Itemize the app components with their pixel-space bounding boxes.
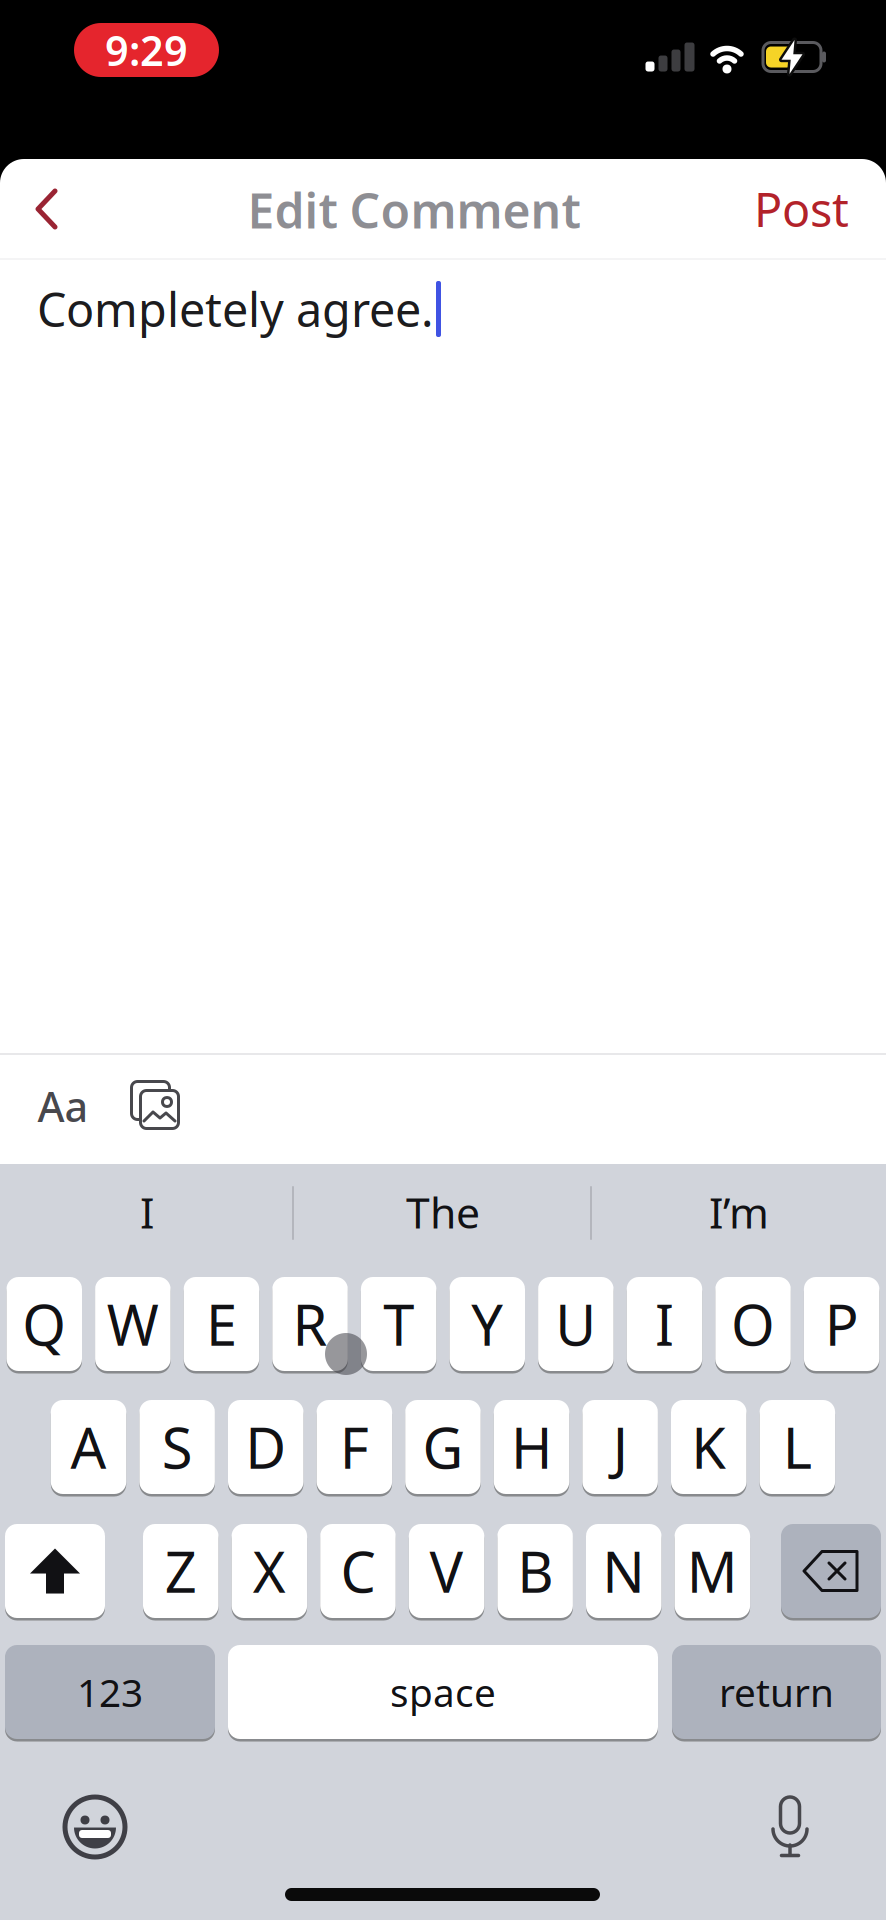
button[interactable]: X <box>232 1524 307 1618</box>
button[interactable]: Attach photo <box>125 1075 185 1135</box>
button[interactable]: N <box>586 1524 661 1618</box>
button[interactable]: I’m <box>594 1167 884 1257</box>
button[interactable]: I <box>2 1167 292 1257</box>
staticText: 9:29 <box>105 23 188 77</box>
staticText: I <box>140 1184 154 1240</box>
button[interactable]: L <box>760 1400 835 1494</box>
button[interactable]: The <box>298 1167 588 1257</box>
staticText: N <box>602 1534 645 1608</box>
button[interactable]: Z <box>143 1524 218 1618</box>
staticText: I’m <box>709 1184 769 1240</box>
staticText: The <box>406 1184 480 1240</box>
button[interactable]: T <box>361 1277 436 1371</box>
button[interactable]: B <box>497 1524 573 1618</box>
staticText: Y <box>471 1287 503 1361</box>
button[interactable]: Delete <box>781 1524 881 1618</box>
button[interactable]: D <box>228 1400 303 1494</box>
staticText: V <box>429 1534 463 1608</box>
button[interactable]: V <box>409 1524 484 1618</box>
staticText: I <box>655 1287 674 1361</box>
staticText: U <box>555 1287 596 1361</box>
staticText: Edit Comment <box>247 178 580 242</box>
staticText: Completely agree. <box>37 278 434 340</box>
button[interactable]: M <box>675 1524 750 1618</box>
staticText: B <box>517 1534 553 1608</box>
button[interactable]: Emoji <box>60 1792 130 1862</box>
staticText: G <box>422 1410 463 1484</box>
button[interactable]: return <box>672 1645 881 1739</box>
button[interactable]: Text format <box>23 1061 103 1151</box>
button[interactable]: A <box>51 1400 126 1494</box>
button[interactable]: Post <box>754 178 886 240</box>
staticText: M <box>687 1534 738 1608</box>
staticText: Q <box>22 1287 66 1361</box>
button[interactable]: P <box>804 1277 879 1371</box>
staticText: P <box>825 1287 859 1361</box>
staticText: L <box>783 1410 812 1484</box>
staticText: R <box>292 1287 327 1361</box>
button[interactable]: J <box>582 1400 658 1494</box>
staticText: Post <box>754 178 849 240</box>
button[interactable]: I <box>627 1277 702 1371</box>
staticText: F <box>340 1410 369 1484</box>
staticText: W <box>107 1287 159 1361</box>
staticText: S <box>162 1410 193 1484</box>
staticText: J <box>613 1410 628 1484</box>
button[interactable]: K <box>671 1400 746 1494</box>
staticText: O <box>731 1287 775 1361</box>
button[interactable]: Dictate <box>755 1792 825 1862</box>
button[interactable]: space <box>228 1645 658 1739</box>
button[interactable]: F <box>317 1400 392 1494</box>
staticText: K <box>691 1410 726 1484</box>
staticText: space <box>390 1666 496 1718</box>
button[interactable]: S <box>139 1400 215 1494</box>
staticText: 123 <box>77 1666 143 1718</box>
staticText: Z <box>165 1534 197 1608</box>
button[interactable]: Shift <box>5 1524 105 1618</box>
button[interactable]: Back <box>17 173 77 245</box>
button[interactable]: Screen recording indicator <box>74 23 219 77</box>
button[interactable]: W <box>95 1277 171 1371</box>
staticText: H <box>511 1410 552 1484</box>
button[interactable]: C <box>320 1524 396 1618</box>
staticText: E <box>206 1287 237 1361</box>
staticText: Aa <box>37 1079 88 1133</box>
button[interactable]: H <box>494 1400 569 1494</box>
staticText: C <box>340 1534 375 1608</box>
button[interactable]: Q <box>6 1277 82 1371</box>
button[interactable]: 123 <box>5 1645 215 1739</box>
button[interactable]: G <box>405 1400 481 1494</box>
button[interactable]: O <box>715 1277 791 1371</box>
staticText: return <box>719 1666 834 1718</box>
staticText: T <box>383 1287 414 1361</box>
button[interactable]: R <box>272 1277 348 1371</box>
button[interactable]: U <box>538 1277 614 1371</box>
button[interactable]: Y <box>449 1277 525 1371</box>
button[interactable]: E <box>184 1277 259 1371</box>
staticText: X <box>253 1534 286 1608</box>
staticText: D <box>245 1410 286 1484</box>
staticText: A <box>70 1410 106 1484</box>
